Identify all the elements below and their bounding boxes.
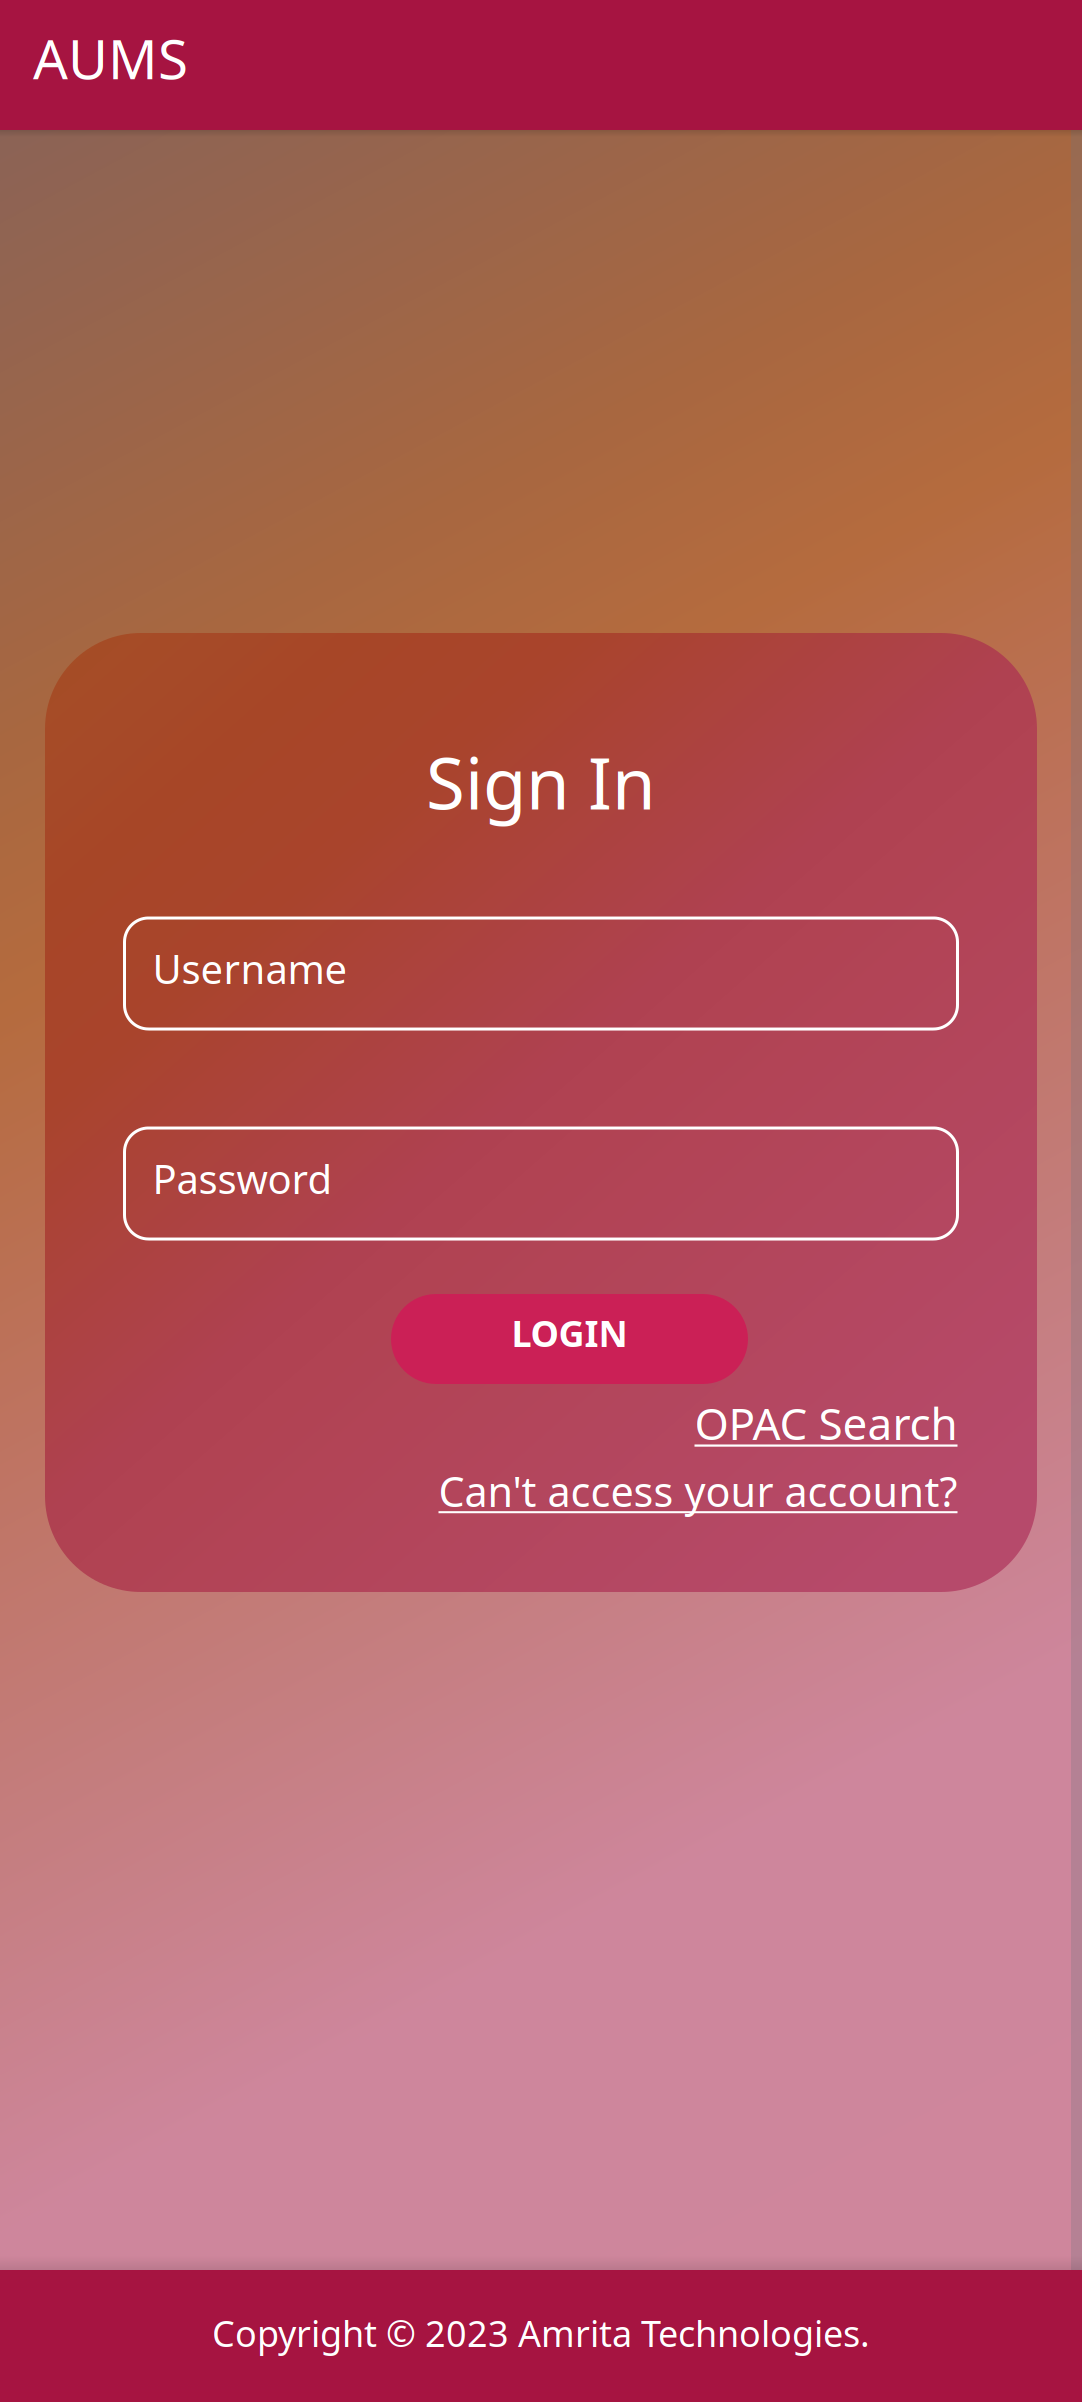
button[interactable]: Password bbox=[124, 1128, 957, 1239]
button[interactable]: Can't access your account? bbox=[124, 1468, 957, 1514]
staticText: Sign In bbox=[426, 735, 656, 829]
button[interactable]: LOGIN bbox=[391, 1294, 748, 1384]
staticText: Copyright © 2023 Amrita Technologies. bbox=[212, 2309, 870, 2357]
staticText: AUMS bbox=[33, 22, 188, 94]
staticText: LOGIN bbox=[511, 1309, 627, 1357]
staticText: Can't access your account? bbox=[438, 1464, 957, 1518]
staticText: Username bbox=[152, 942, 347, 995]
staticText: OPAC Search bbox=[694, 1394, 957, 1452]
button[interactable]: OPAC Search bbox=[124, 1400, 957, 1446]
button[interactable]: Username bbox=[124, 918, 957, 1029]
staticText: Password bbox=[152, 1152, 332, 1205]
